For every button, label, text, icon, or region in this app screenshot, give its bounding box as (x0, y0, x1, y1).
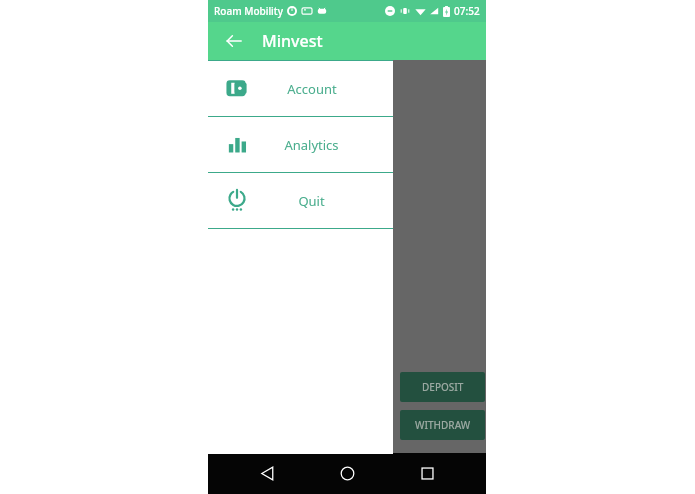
staticText: 07:52 (454, 4, 480, 18)
button[interactable]: Back (246, 453, 288, 494)
staticText: Roam Mobility (214, 4, 283, 18)
button[interactable]: Account (208, 61, 393, 116)
button[interactable]: DEPOSIT (400, 372, 485, 402)
button[interactable]: Home (326, 453, 368, 494)
button[interactable]: Back (220, 27, 248, 55)
staticText: WITHDRAW (415, 418, 471, 432)
button[interactable]: Analytics (208, 117, 393, 172)
staticText: Account (287, 80, 337, 98)
button[interactable]: WITHDRAW (400, 410, 485, 440)
button[interactable]: Recents (406, 453, 448, 494)
staticText: Minvest (262, 30, 323, 52)
button[interactable]: Quit (208, 173, 393, 228)
staticText: DEPOSIT (422, 380, 464, 394)
staticText: Quit (298, 192, 325, 210)
staticText: Analytics (284, 136, 339, 154)
